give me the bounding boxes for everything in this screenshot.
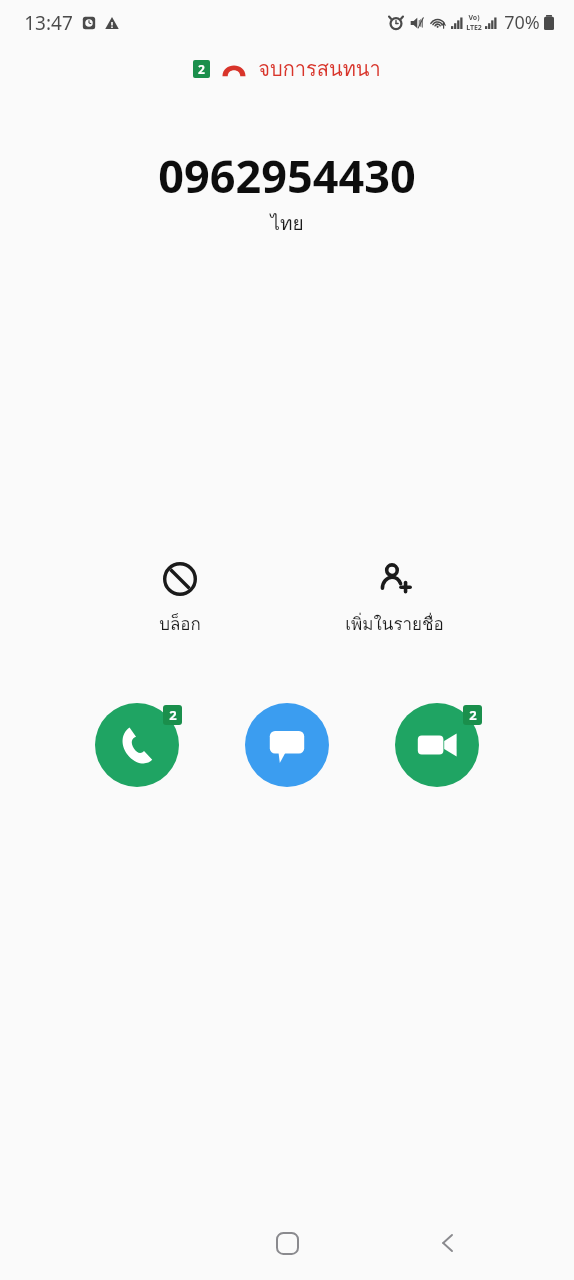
staticText: LTE2 (466, 23, 482, 33)
other: Add to contacts (377, 562, 411, 596)
staticText: 2 (469, 706, 477, 724)
button[interactable]: Back (420, 1215, 476, 1271)
staticText: เพิ่มในรายชื่อ (345, 610, 444, 637)
button[interactable]: Home (259, 1215, 315, 1271)
other: Block (163, 562, 197, 596)
button[interactable]: Message (241, 699, 333, 791)
staticText: บล็อก (159, 610, 201, 637)
button[interactable]: Add to contacts (341, 558, 447, 641)
staticText: 13:47 (24, 10, 73, 36)
staticText: 70% (504, 10, 540, 35)
button[interactable]: Block (127, 558, 233, 641)
staticText: 2 (169, 706, 177, 724)
staticText: Vo) (468, 13, 480, 23)
staticText: 2 (198, 61, 205, 77)
staticText: จบการสนทนา (258, 53, 381, 85)
staticText: ไทย (270, 208, 304, 238)
button[interactable]: Call (91, 699, 183, 791)
staticText: 0962954430 (158, 145, 416, 206)
button[interactable]: Video call (391, 699, 483, 791)
